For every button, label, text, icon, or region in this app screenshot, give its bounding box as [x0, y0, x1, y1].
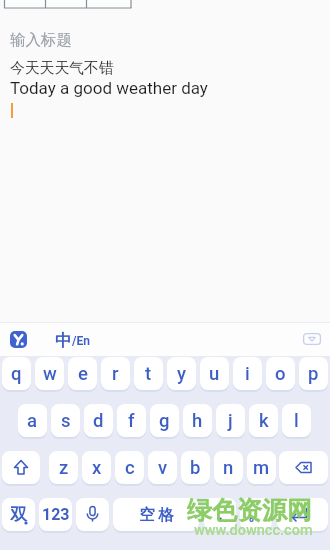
staticText: v — [158, 457, 168, 479]
staticText: b — [190, 457, 201, 479]
button[interactable]: v — [148, 451, 177, 484]
staticText: o — [275, 363, 286, 385]
button[interactable]: u — [200, 357, 229, 390]
button[interactable]: o — [266, 357, 295, 390]
staticText: 今天天天气不错 — [10, 59, 114, 78]
button[interactable]: j — [216, 404, 245, 437]
button[interactable]: l — [282, 404, 311, 437]
button[interactable]: 。 — [240, 498, 272, 531]
button[interactable]: c — [115, 451, 144, 484]
staticText: ， — [212, 505, 228, 525]
button[interactable]: y — [167, 357, 196, 390]
button[interactable]: q — [2, 357, 31, 390]
button[interactable]: 123 — [39, 498, 72, 531]
staticText: w — [43, 363, 57, 385]
button[interactable] — [76, 498, 109, 531]
button[interactable]: g — [150, 404, 179, 437]
staticText: /En — [72, 334, 90, 348]
button[interactable]: p — [299, 357, 328, 390]
button[interactable] — [2, 451, 40, 484]
staticText: m — [253, 457, 270, 479]
staticText: q — [11, 363, 22, 385]
staticText: 绿色资源网 — [187, 495, 312, 526]
staticText: e — [78, 363, 88, 385]
button[interactable] — [279, 451, 328, 484]
staticText: 空 格 — [139, 505, 174, 525]
staticText: p — [308, 363, 319, 385]
staticText: www.downcc.com — [194, 522, 313, 539]
button[interactable]: ， — [204, 498, 236, 531]
staticText: t — [145, 363, 152, 385]
staticText: f — [128, 410, 135, 432]
button[interactable]: 空 格 — [113, 498, 199, 531]
staticText: r — [112, 363, 119, 385]
button[interactable]: s — [51, 404, 80, 437]
staticText: i — [245, 363, 250, 385]
staticText: Today a good weather day — [10, 78, 208, 98]
button[interactable]: e — [68, 357, 97, 390]
staticText: h — [192, 410, 203, 432]
button[interactable] — [277, 498, 328, 531]
staticText: d — [93, 410, 104, 432]
button[interactable]: 中 — [55, 330, 90, 351]
button[interactable]: i — [233, 357, 262, 390]
button[interactable]: w — [35, 357, 64, 390]
staticText: u — [209, 363, 220, 385]
staticText: c — [125, 457, 135, 479]
button[interactable]: x — [82, 451, 111, 484]
staticText: s — [61, 410, 71, 432]
staticText: n — [223, 457, 234, 479]
staticText: 123 — [42, 505, 70, 524]
button[interactable]: h — [183, 404, 212, 437]
button[interactable]: k — [249, 404, 278, 437]
staticText: a — [27, 410, 38, 432]
button[interactable]: m — [247, 451, 276, 484]
button[interactable]: a — [18, 404, 47, 437]
staticText: k — [259, 410, 269, 432]
staticText: z — [59, 457, 69, 479]
staticText: 。 — [248, 505, 264, 525]
button[interactable]: t — [134, 357, 163, 390]
staticText: y — [177, 363, 187, 385]
button[interactable]: n — [214, 451, 243, 484]
button[interactable]: 双 — [2, 498, 35, 531]
button[interactable]: r — [101, 357, 130, 390]
staticText: 输入标题 — [10, 30, 72, 50]
staticText: x — [92, 457, 102, 479]
button[interactable] — [303, 333, 321, 345]
staticText: g — [159, 410, 170, 432]
button[interactable]: b — [181, 451, 210, 484]
button[interactable]: f — [117, 404, 146, 437]
staticText: 双 — [10, 504, 27, 525]
staticText: j — [228, 410, 233, 432]
button[interactable]: d — [84, 404, 113, 437]
staticText: l — [294, 410, 299, 432]
button[interactable]: z — [49, 451, 78, 484]
button[interactable] — [10, 331, 27, 348]
staticText: 中 — [55, 330, 72, 351]
